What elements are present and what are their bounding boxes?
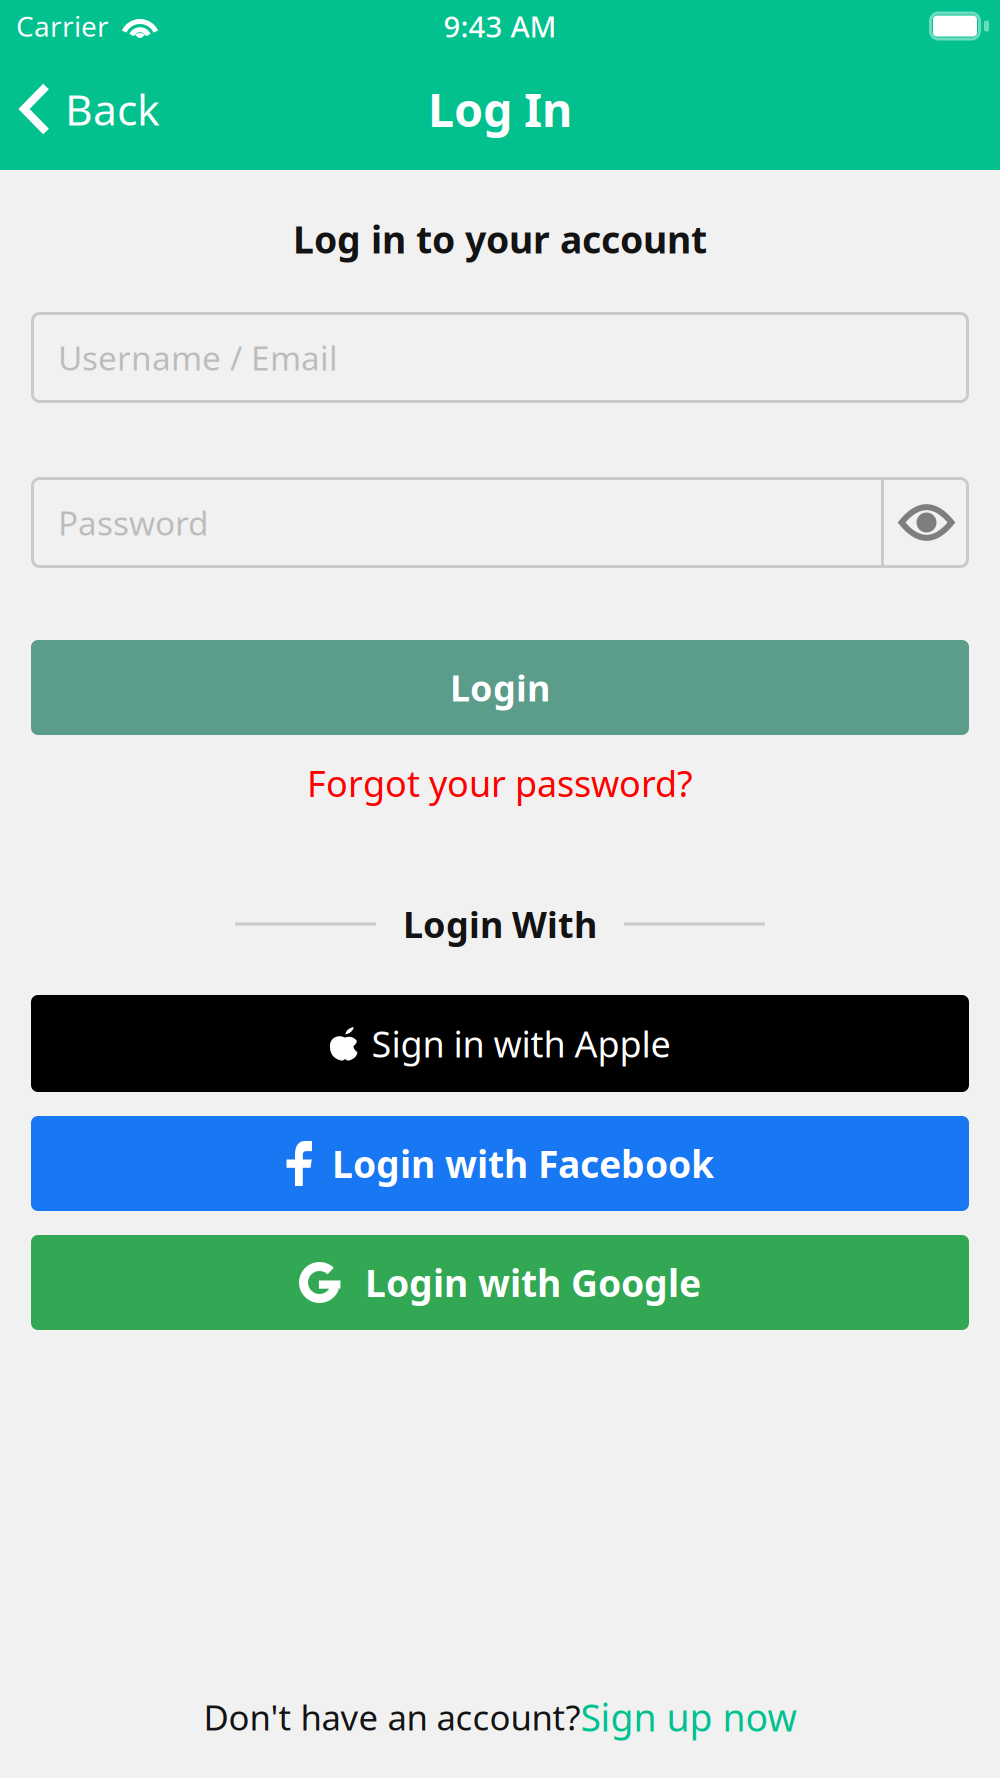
staticText: Username / Email — [58, 335, 338, 380]
staticText: Sign in with Apple — [371, 1020, 670, 1067]
staticText: Sign up now — [580, 1692, 796, 1742]
button[interactable]: Back — [0, 69, 160, 149]
staticText: Login with Facebook — [332, 1139, 714, 1188]
staticText: Login with Google — [365, 1258, 701, 1307]
staticText: Don't have an account? — [203, 1694, 580, 1740]
button[interactable]: Login with Google — [31, 1235, 969, 1330]
button[interactable]: Show password — [884, 477, 969, 568]
button[interactable]: Login — [31, 640, 969, 735]
staticText: Log in to your account — [293, 214, 707, 264]
button[interactable]: Forgot your password? — [307, 751, 693, 815]
staticText: Log In — [428, 78, 572, 140]
staticText: Password — [58, 500, 209, 545]
staticText: Back — [65, 81, 160, 137]
button[interactable]: Login with Facebook — [31, 1116, 969, 1211]
staticText: Login With — [403, 900, 597, 948]
staticText: Login — [450, 664, 550, 711]
staticText: Carrier — [16, 7, 109, 45]
button[interactable]: Sign in with Apple — [31, 995, 969, 1092]
staticText: Forgot your password? — [307, 759, 693, 807]
staticText: 9:43 AM — [443, 6, 556, 45]
button[interactable]: Sign up now — [580, 1692, 796, 1742]
